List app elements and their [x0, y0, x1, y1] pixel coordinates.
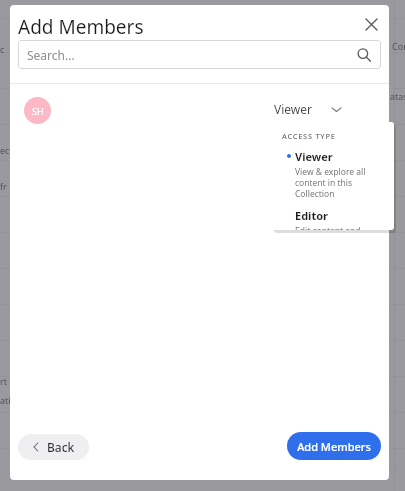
staticText: atas: [390, 90, 405, 102]
button[interactable]: Close: [358, 11, 384, 37]
staticText: ec: [0, 144, 10, 156]
button[interactable]: Editor: [282, 208, 386, 230]
button[interactable]: Viewer: [282, 149, 386, 199]
staticText: Cont: [392, 40, 405, 52]
button[interactable]: Viewer: [274, 98, 349, 120]
button[interactable]: Back: [18, 434, 89, 460]
button[interactable]: Search...: [18, 40, 381, 69]
staticText: Viewer: [295, 149, 333, 164]
staticText: Search...: [27, 47, 75, 63]
staticText: SH: [32, 105, 44, 117]
button[interactable]: Add Members: [287, 432, 381, 460]
staticText: ati: [0, 394, 11, 406]
staticText: rt: [0, 375, 7, 387]
staticText: Back: [47, 439, 75, 455]
staticText: Editor: [295, 208, 328, 223]
staticText: Edit content and manage this Collection: [295, 225, 386, 230]
staticText: Viewer: [274, 101, 312, 117]
staticText: fr: [0, 180, 7, 192]
staticText: Add Members: [297, 439, 371, 454]
staticText: c: [0, 43, 5, 55]
staticText: View & explore all content in this Colle…: [295, 166, 386, 199]
staticText: Add Members: [18, 14, 144, 40]
staticText: ACCESS TYPE: [282, 131, 336, 141]
